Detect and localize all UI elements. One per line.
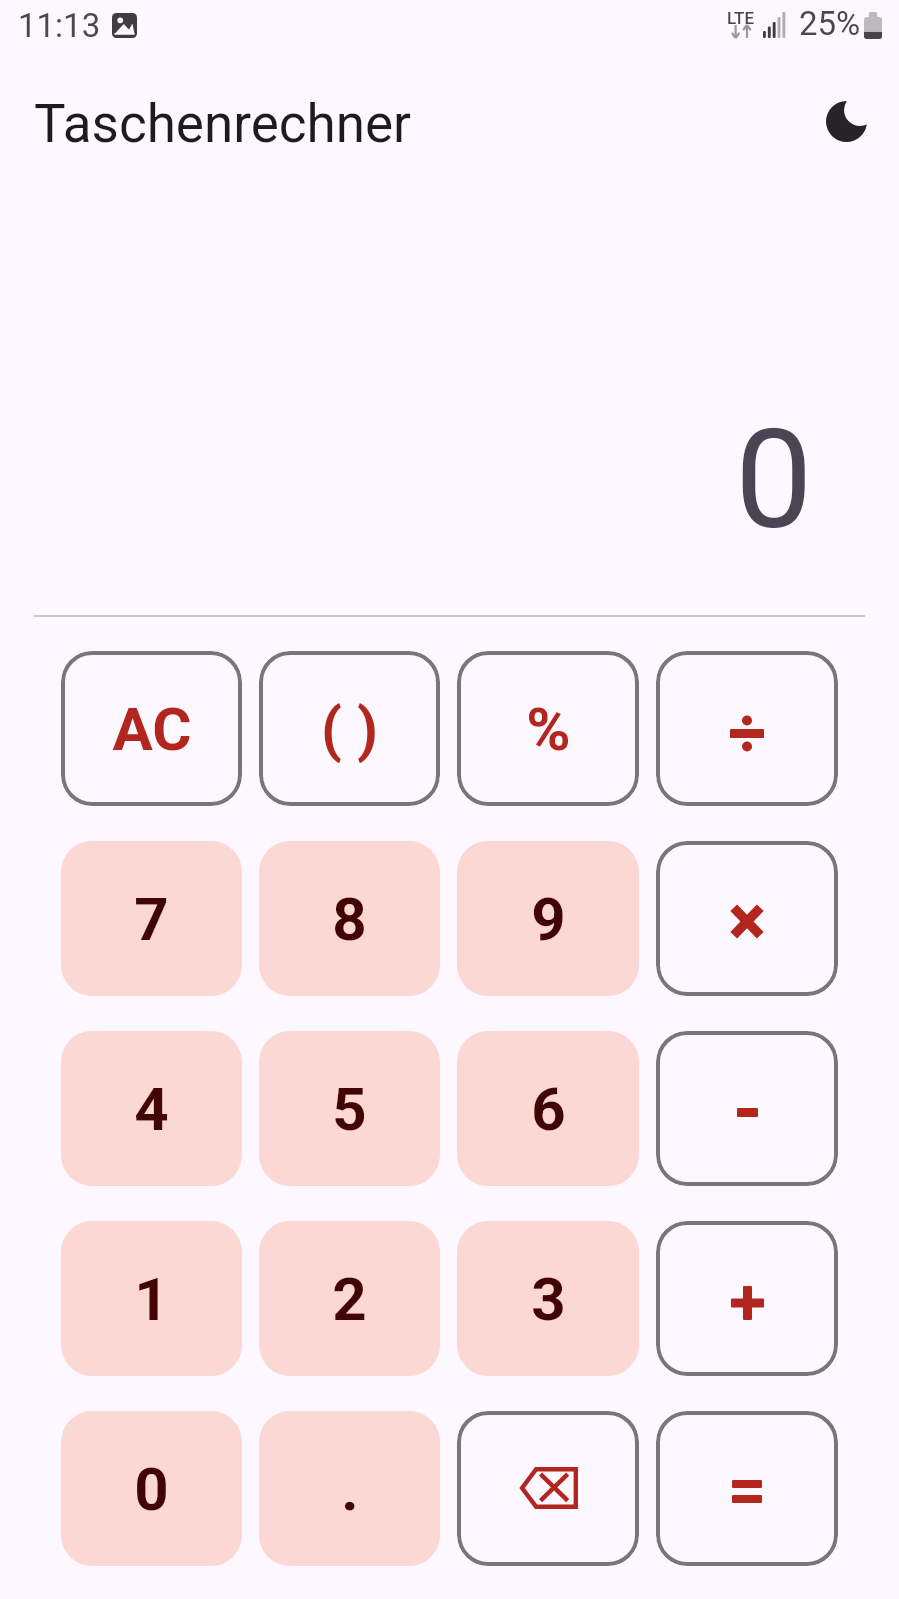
staticText: 9 [531,884,566,954]
button[interactable]: Multiply [656,841,838,996]
button[interactable]: Backspace [457,1411,639,1566]
staticText: 0 [735,399,813,561]
staticText: 4 [134,1074,169,1144]
button[interactable]: 8 [259,841,440,996]
staticText: 25% [799,4,861,43]
button[interactable]: 6 [457,1031,639,1186]
button[interactable]: Minus [656,1031,838,1186]
button[interactable]: 4 [61,1031,242,1186]
staticText: 7 [134,884,169,954]
staticText: Taschenrechner [34,93,412,155]
staticText: 1 [134,1264,169,1334]
button[interactable]: . [259,1411,440,1566]
staticText: 6 [531,1074,566,1144]
staticText: % [526,694,571,764]
staticText: 5 [332,1074,367,1144]
staticText: 8 [332,884,367,954]
staticText: 11:13 [18,6,101,45]
button[interactable]: Toggle dark mode [812,87,880,155]
button[interactable]: Equals [656,1411,838,1566]
button[interactable]: ( ) [259,651,440,806]
staticText: AC [112,694,192,764]
button[interactable]: Divide [656,651,838,806]
button[interactable]: 3 [457,1221,639,1376]
button[interactable]: % [457,651,639,806]
button[interactable]: 2 [259,1221,440,1376]
staticText: ( ) [321,694,378,764]
button[interactable]: 5 [259,1031,440,1186]
staticText: 3 [531,1264,566,1334]
staticText: . [341,1454,359,1524]
button[interactable]: 9 [457,841,639,996]
button[interactable]: 1 [61,1221,242,1376]
staticText: 2 [332,1264,367,1334]
button[interactable]: Plus [656,1221,838,1376]
button[interactable]: 7 [61,841,242,996]
staticText: 0 [134,1454,169,1524]
button[interactable]: AC [61,651,242,806]
button[interactable]: 0 [61,1411,242,1566]
staticText: LTE [727,8,755,28]
